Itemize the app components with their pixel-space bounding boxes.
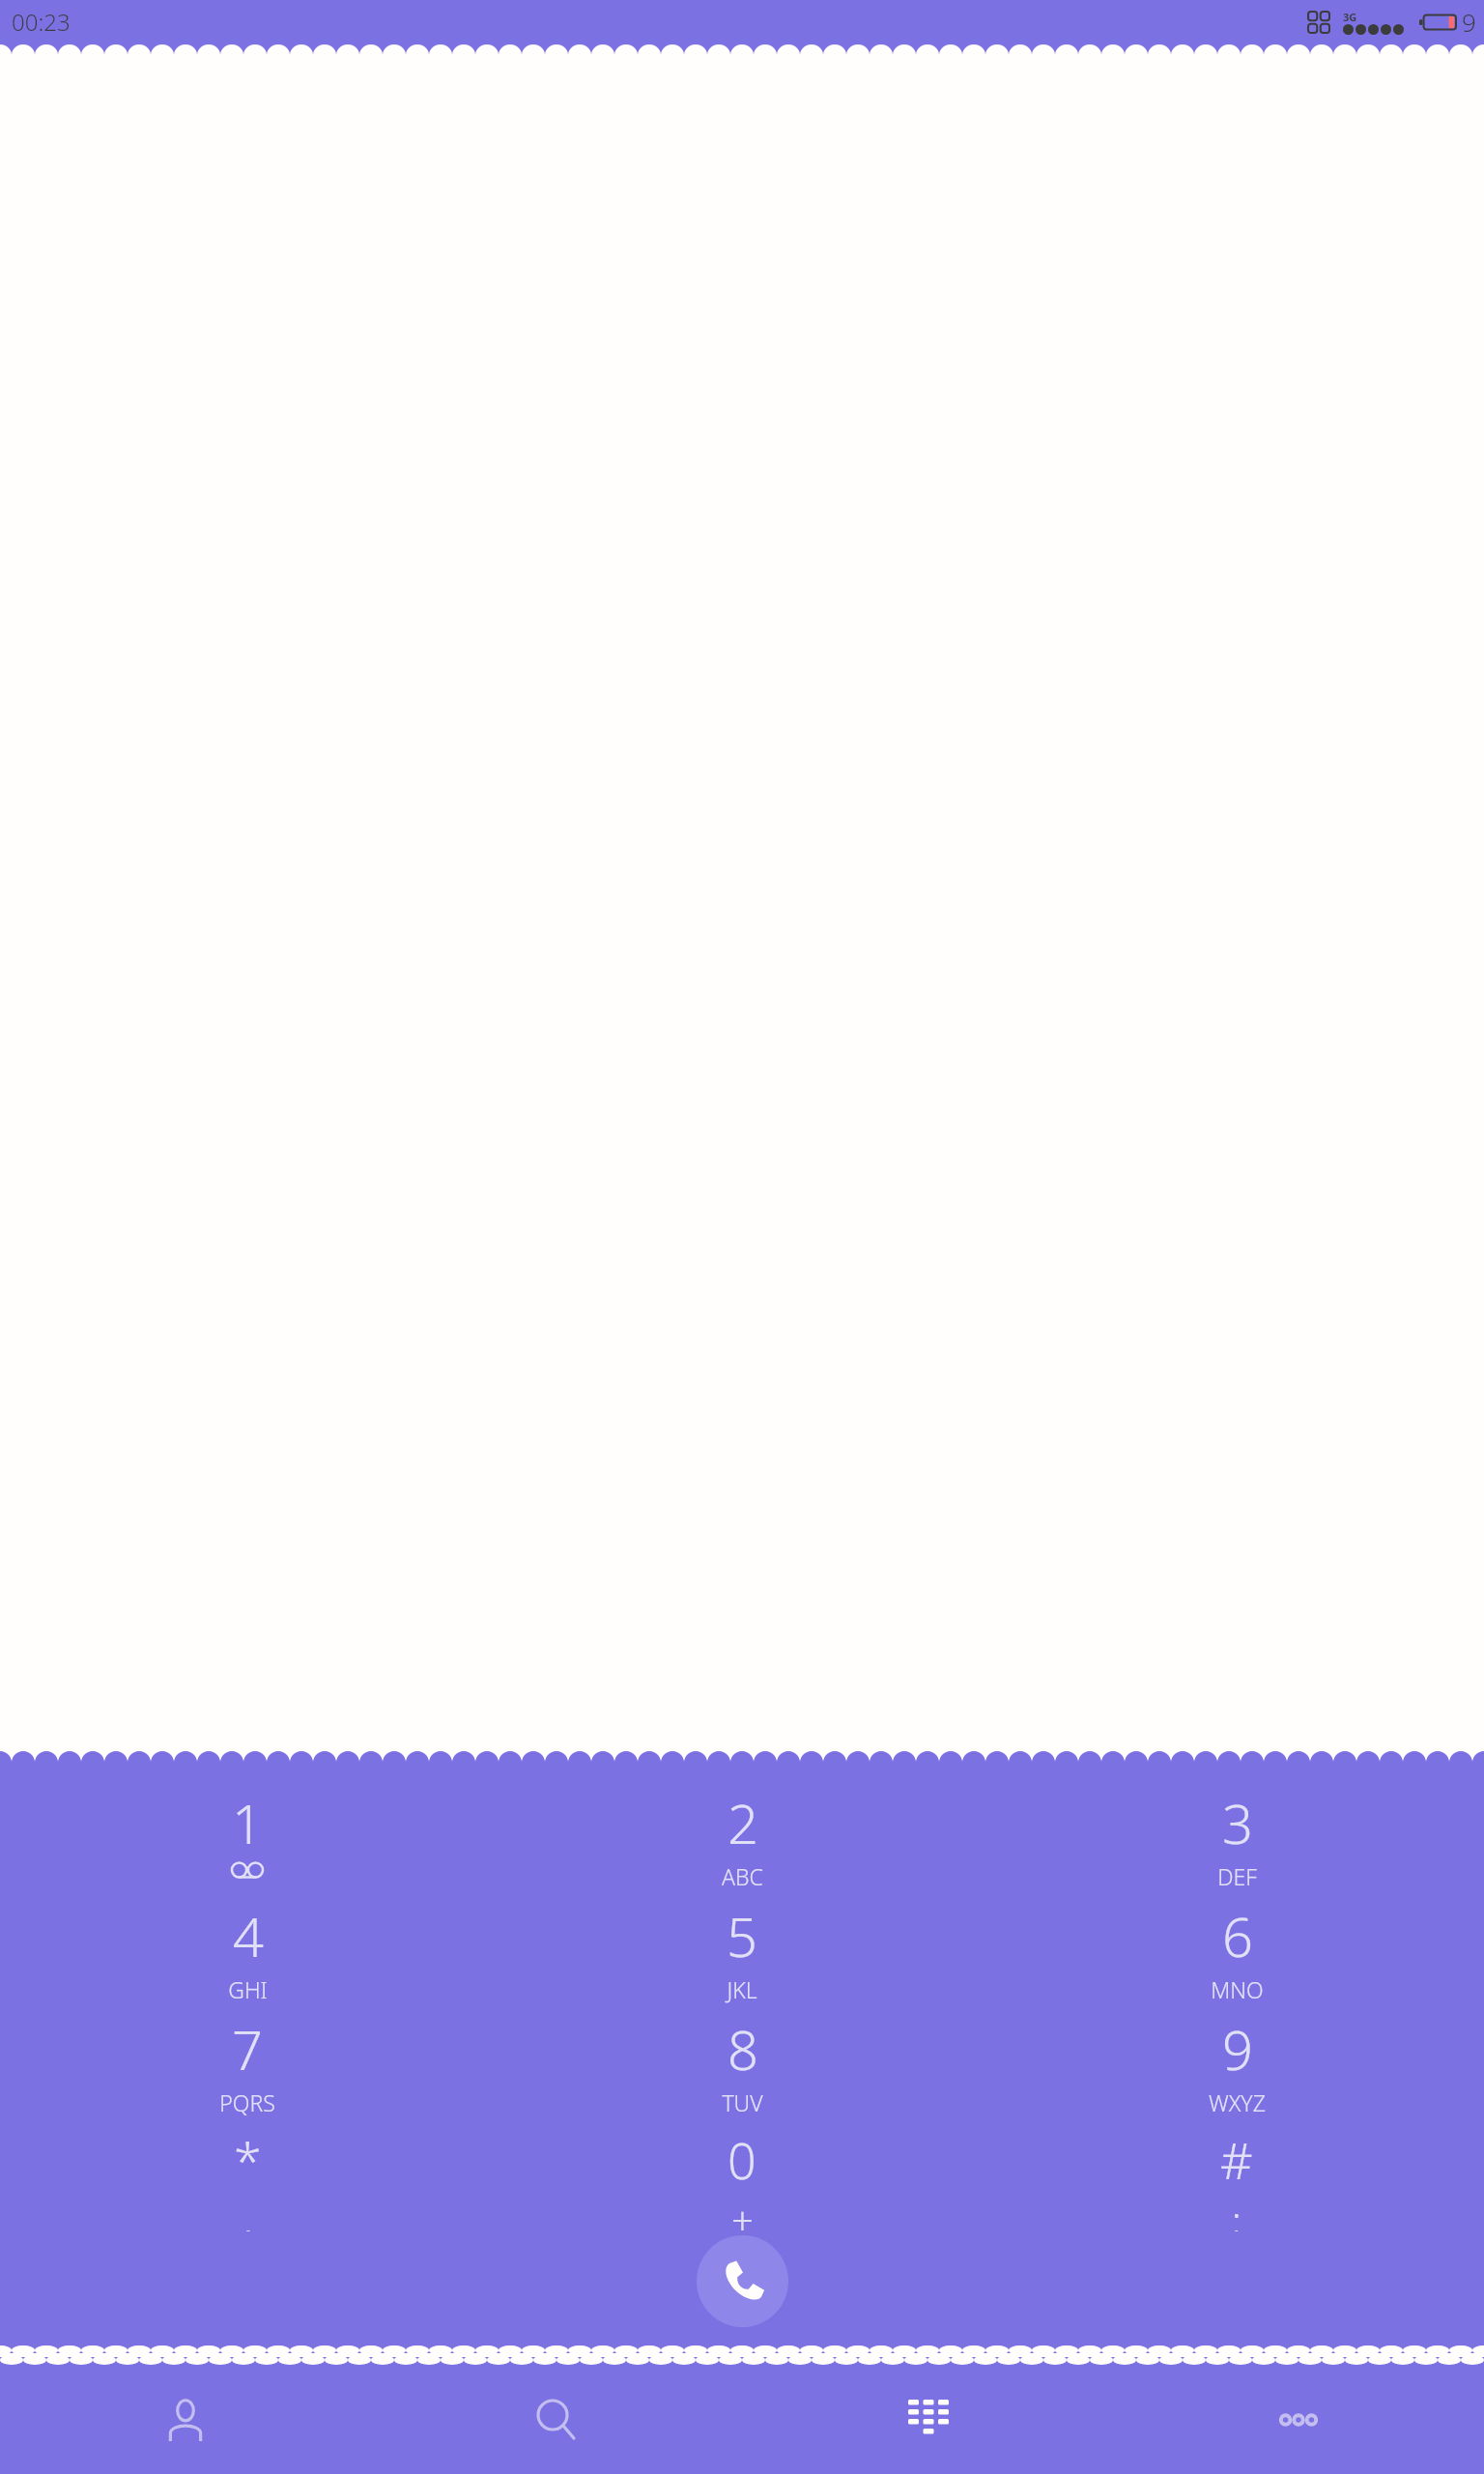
button[interactable]: 6 [989, 1899, 1484, 2012]
staticText: ; [1232, 2194, 1241, 2231]
staticText: 9 [1462, 5, 1476, 39]
staticText: + [731, 2194, 754, 2231]
button[interactable]: Call [697, 2235, 788, 2327]
button[interactable]: More options [1113, 2366, 1484, 2474]
button[interactable]: 8 [495, 2012, 989, 2125]
staticText: 8 [728, 2012, 758, 2086]
button[interactable]: 4 [0, 1899, 495, 2012]
staticText: 3 [1222, 1786, 1253, 1859]
staticText: 1 [232, 1786, 263, 1859]
staticText: 3G [1343, 10, 1357, 24]
staticText: 9 [1222, 2012, 1253, 2086]
staticText: PQRS [219, 2087, 275, 2117]
staticText: JKL [727, 1974, 757, 2004]
staticText: DEF [1217, 1861, 1257, 1891]
staticText: ABC [722, 1861, 763, 1891]
button[interactable]: Dialpad [742, 2366, 1113, 2474]
staticText: # [1220, 2125, 1253, 2194]
button[interactable]: 1 [0, 1786, 495, 1899]
button[interactable]: 2 [495, 1786, 989, 1899]
staticText: 7 [232, 2012, 263, 2086]
button[interactable]: # [989, 2125, 1484, 2231]
button[interactable]: 7 [0, 2012, 495, 2125]
staticText: WXYZ [1209, 2087, 1266, 2117]
button[interactable]: Contacts [0, 2366, 371, 2474]
button[interactable]: 0 [495, 2125, 989, 2231]
staticText: 5 [727, 1899, 757, 1972]
button[interactable]: 9 [989, 2012, 1484, 2125]
button[interactable]: 5 [495, 1899, 989, 2012]
button[interactable]: * [0, 2125, 495, 2231]
staticText: 4 [233, 1899, 264, 1972]
staticText: 0 [728, 2125, 756, 2194]
button[interactable]: 3 [989, 1786, 1484, 1899]
staticText: MNO [1211, 1974, 1264, 2004]
staticText: 00:23 [12, 6, 71, 38]
button[interactable]: Search [371, 2366, 742, 2474]
staticText: 2 [728, 1786, 758, 1859]
staticText: GHI [228, 1974, 268, 2004]
staticText: * [234, 2125, 262, 2194]
staticText: 6 [1222, 1899, 1253, 1972]
staticText: TUV [722, 2087, 763, 2117]
